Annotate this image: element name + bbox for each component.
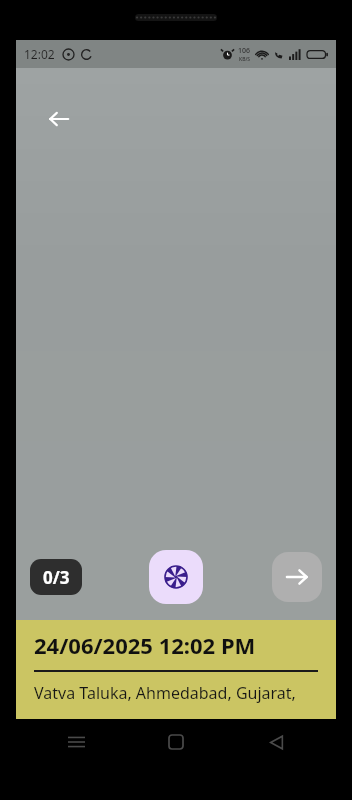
button[interactable]: 0/3 [30, 559, 82, 595]
button[interactable]: Back [252, 719, 300, 765]
staticText: 24/06/2025 12:02 PM [34, 630, 256, 660]
staticText: 12:02 [24, 46, 55, 62]
button[interactable]: Next [272, 552, 322, 602]
button[interactable]: Home [152, 719, 200, 765]
button[interactable]: Capture photo [149, 550, 203, 604]
staticText: Vatva Taluka, Ahmedabad, Gujarat, [34, 682, 296, 704]
staticText: KB/S [239, 56, 251, 63]
button[interactable]: Recent apps [52, 719, 100, 765]
staticText: 106 [238, 46, 251, 56]
button[interactable]: Back [38, 98, 80, 140]
staticText: 0/3 [43, 566, 70, 589]
